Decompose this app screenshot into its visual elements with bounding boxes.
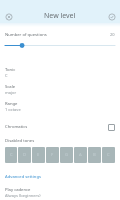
button[interactable]: G [60,147,73,163]
button[interactable]: F [46,147,59,163]
button[interactable]: E [32,147,45,163]
button[interactable]: C [102,147,115,163]
button[interactable]: Scale [0,84,120,95]
staticText: A [79,152,82,158]
staticText: Play cadence [5,187,31,193]
staticText: C [5,73,8,78]
staticText: C [10,152,13,158]
staticText: New level [44,11,76,21]
staticText: 1 octave [5,107,21,112]
staticText: Disabled tones [5,138,35,144]
button[interactable]: Chromatics [0,121,120,133]
staticText: Chromatics [5,124,28,130]
button[interactable]: Confirm [105,10,118,23]
button[interactable]: B [88,147,101,163]
button[interactable]: Play cadence [0,187,120,198]
button[interactable]: C [5,147,17,163]
staticText: Number of questions [5,32,47,38]
staticText: D [23,152,27,158]
button[interactable]: Tonic [0,67,120,78]
button[interactable]: Range [0,101,120,112]
staticText: G [65,152,69,158]
staticText: E [37,152,40,158]
staticText: Range [5,101,18,107]
button[interactable]: Close [2,10,15,23]
button[interactable]: Number of questions [5,41,115,50]
staticText: Advanced settings [5,174,41,180]
button[interactable]: Advanced settings [5,174,41,180]
staticText: Tonic [5,67,16,73]
staticText: 20 [110,32,115,37]
button[interactable]: D [18,147,31,163]
staticText: Scale [5,84,16,90]
button[interactable]: A [74,147,87,163]
staticText: C [107,152,110,158]
staticText: B [93,152,96,158]
staticText: Always (beginners) [5,193,41,198]
staticText: major [5,90,17,95]
staticText: F [51,152,54,158]
